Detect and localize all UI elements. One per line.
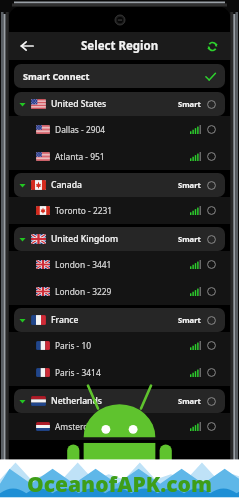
button[interactable]: Dallas - 2904 xyxy=(9,116,230,143)
staticText: United States xyxy=(51,98,178,110)
button[interactable]: Atlanta - 951 xyxy=(9,143,230,170)
staticText: Toronto - 2231 xyxy=(55,205,190,216)
staticText: France xyxy=(51,314,178,326)
staticText: Smart Connect xyxy=(23,70,90,82)
button[interactable]: Back xyxy=(15,34,39,58)
button[interactable]: London - 3441 xyxy=(9,251,230,278)
staticText: Smart xyxy=(178,99,201,109)
staticText: Smart xyxy=(178,180,201,190)
button[interactable]: Canada xyxy=(14,173,225,197)
button[interactable]: Amsterdam - 1122 xyxy=(9,413,230,440)
staticText: London - 3441 xyxy=(55,259,190,270)
staticText: Amsterdam - 1122 xyxy=(55,421,190,432)
button[interactable]: Toronto - 2231 xyxy=(9,197,230,224)
button[interactable]: United Kingdom xyxy=(14,227,225,251)
staticText: Paris - 10 xyxy=(55,340,190,351)
staticText: OceanofAPK.com xyxy=(27,470,212,499)
button[interactable]: Refresh xyxy=(201,35,223,57)
staticText: Select Region xyxy=(81,38,159,54)
staticText: Smart xyxy=(178,234,201,244)
staticText: Netherlands xyxy=(51,395,178,407)
button[interactable]: Smart Connect xyxy=(14,64,225,88)
staticText: United Kingdom xyxy=(51,233,178,245)
button[interactable]: Netherlands xyxy=(14,389,225,413)
staticText: Canada xyxy=(51,179,178,191)
staticText: Smart xyxy=(178,396,201,406)
staticText: Atlanta - 951 xyxy=(55,151,190,162)
button[interactable]: Paris - 3414 xyxy=(9,359,230,386)
staticText: Dallas - 2904 xyxy=(55,124,190,135)
staticText: London - 3229 xyxy=(55,286,190,297)
button[interactable]: Paris - 10 xyxy=(9,332,230,359)
button[interactable]: France xyxy=(14,308,225,332)
button[interactable]: United States xyxy=(14,92,225,116)
staticText: Smart xyxy=(178,315,201,325)
staticText: Paris - 3414 xyxy=(55,367,190,378)
button[interactable]: London - 3229 xyxy=(9,278,230,305)
